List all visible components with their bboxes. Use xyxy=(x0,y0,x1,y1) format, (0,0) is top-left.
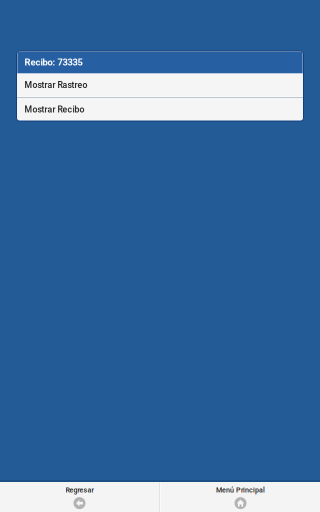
button[interactable]: Menú Principal xyxy=(161,482,320,512)
staticText: Menú Principal xyxy=(216,486,265,494)
staticText: Regresar xyxy=(65,486,93,494)
button[interactable]: Mostrar Rastreo xyxy=(16,73,303,96)
button[interactable]: Regresar xyxy=(0,482,159,512)
staticText: Mostrar Recibo xyxy=(24,104,84,115)
staticText: Mostrar Rastreo xyxy=(24,80,87,90)
button[interactable]: Mostrar Recibo xyxy=(16,98,303,121)
staticText: Recibo: 73335 xyxy=(24,57,82,68)
